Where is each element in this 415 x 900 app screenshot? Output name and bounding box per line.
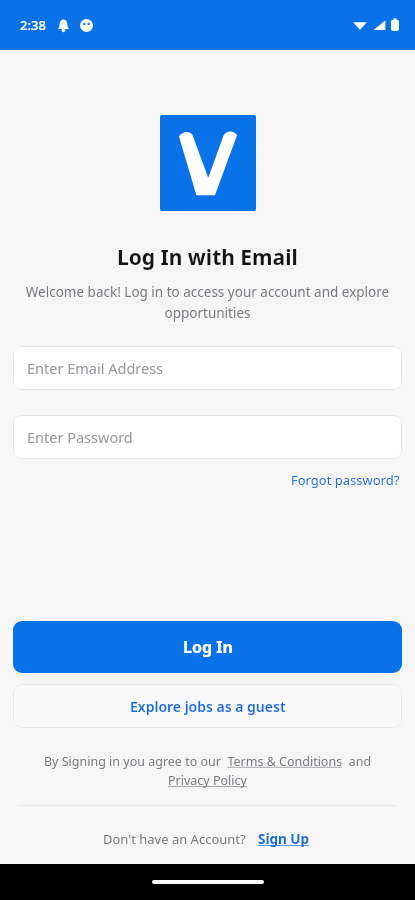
staticText: Sign Up [258, 830, 310, 848]
button[interactable]: Enter Email Address [13, 346, 402, 390]
staticText: By Signing in you agree to our Terms & C… [22, 753, 393, 789]
staticText: 2:38 [20, 16, 46, 34]
button[interactable]: Forgot password? [289, 469, 402, 491]
button[interactable]: Explore jobs as a guest [13, 684, 402, 728]
staticText: Explore jobs as a guest [130, 697, 286, 716]
staticText: Log In [183, 636, 233, 658]
button[interactable]: Log In [13, 621, 402, 673]
staticText: Forgot password? [291, 471, 400, 489]
staticText: Enter Password [27, 427, 133, 447]
staticText: Welcome back! Log in to access your acco… [24, 283, 391, 322]
staticText: Don't have an Account? [103, 830, 246, 848]
staticText: Enter Email Address [27, 358, 164, 378]
staticText: Log In with Email [117, 243, 298, 272]
button[interactable]: Enter Password [13, 415, 402, 459]
button[interactable]: Sign Up [256, 828, 312, 850]
